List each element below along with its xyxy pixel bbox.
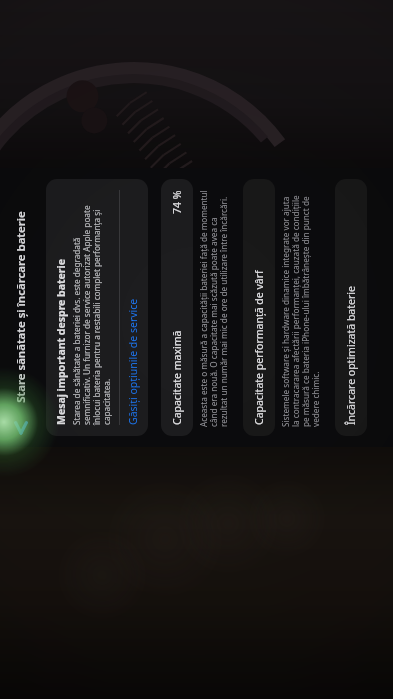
button[interactable]: Încărcare optimizată baterie [335, 179, 367, 436]
button[interactable]: Găsiți opțiunile de service [126, 190, 140, 425]
button[interactable]: Back [10, 415, 32, 441]
staticText: 74 % [170, 190, 184, 214]
staticText: Capacitate performanță de vârf [252, 270, 266, 425]
staticText: Stare sănătate și încărcare baterie [13, 211, 29, 403]
staticText: Sistemele software și hardware dinamice … [280, 188, 322, 427]
staticText: Starea de sănătate a bateriei dvs. este … [71, 190, 113, 425]
staticText: Încărcare optimizată baterie [344, 286, 358, 425]
staticText: Aceasta este o măsură a capacității bate… [198, 188, 230, 427]
staticText: Găsiți opțiunile de service [126, 298, 140, 425]
staticText: Capacitate maximă [170, 330, 184, 425]
staticText: Mesaj important despre baterie [54, 259, 68, 425]
button[interactable]: Mesaj important despre baterie [46, 179, 148, 436]
button[interactable]: Capacitate performanță de vârf [243, 179, 275, 436]
button[interactable]: Capacitate maximă [161, 179, 193, 436]
